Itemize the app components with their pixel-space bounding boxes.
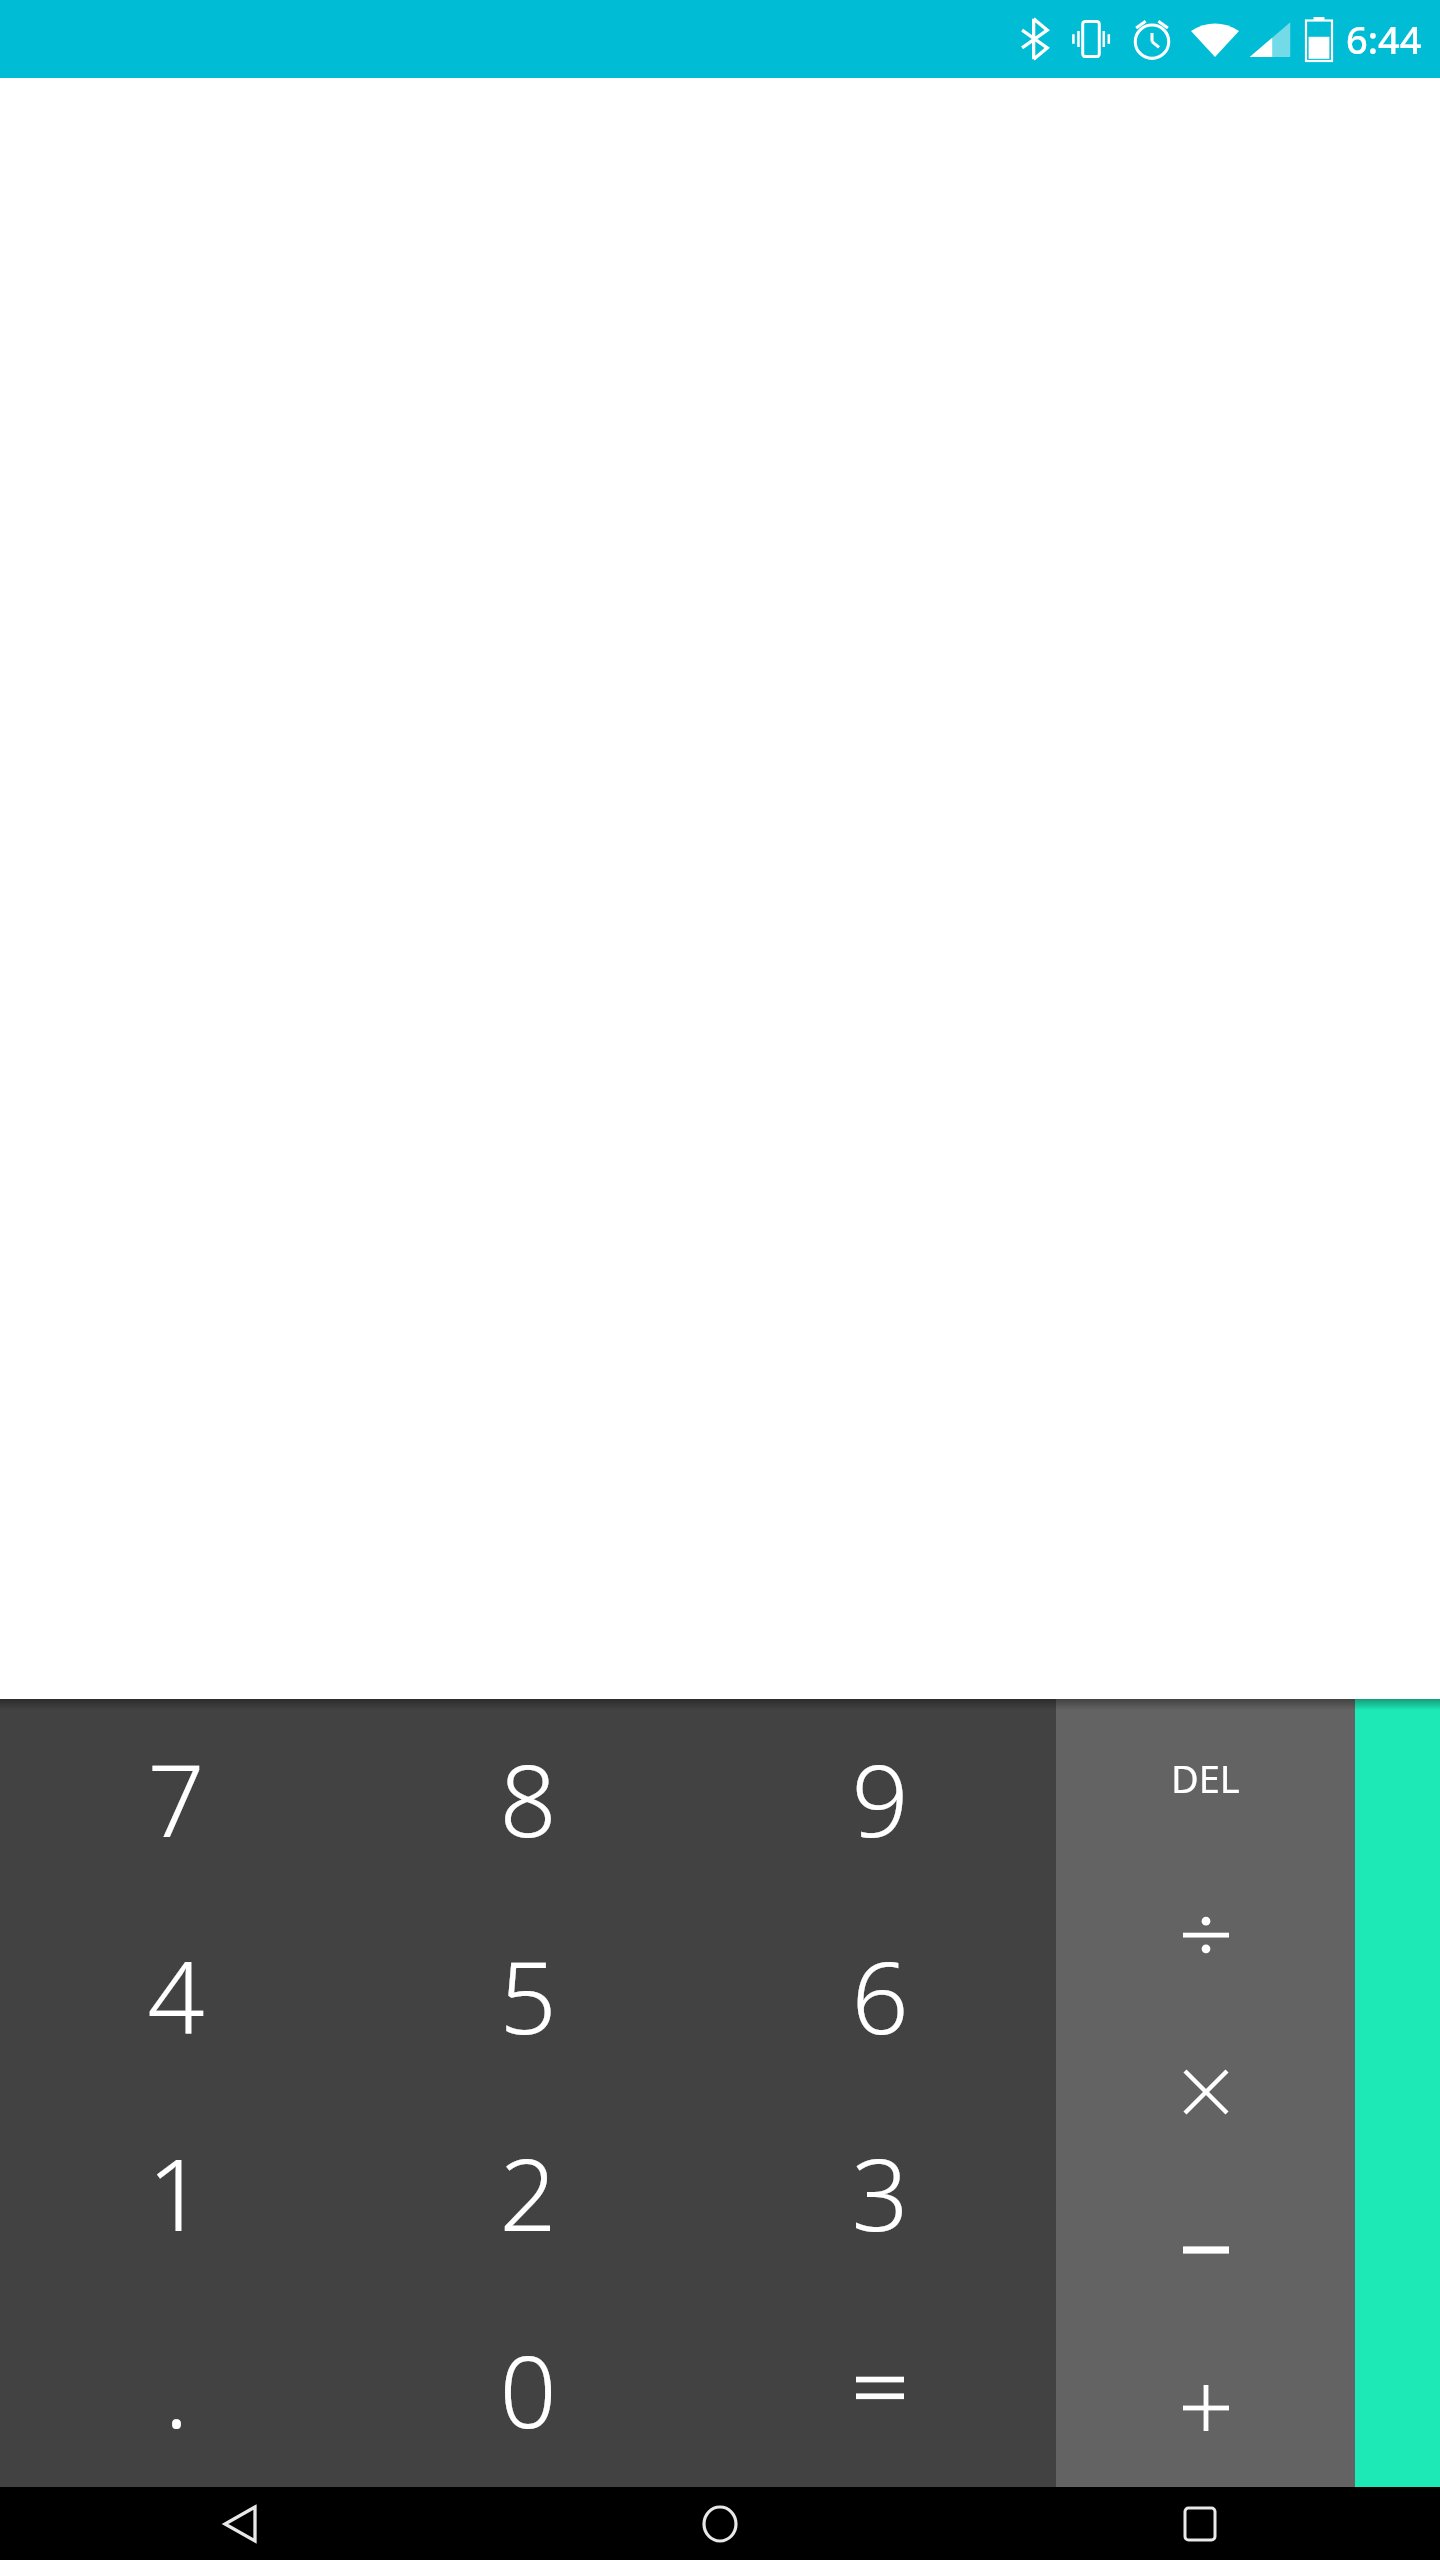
button[interactable]: 9 [704,1699,1056,1896]
button[interactable]: 0 [352,2290,704,2487]
staticText: 6 [851,1927,909,2063]
staticText: 7 [147,1730,205,1866]
button[interactable] [704,2290,1056,2487]
button[interactable]: 6 [704,1896,1056,2093]
staticText: DEL [1171,1752,1240,1804]
staticText: 1 [147,2124,205,2260]
button[interactable]: 4 [0,1896,352,2093]
button[interactable]: Divide [1056,1856,1355,2013]
button[interactable]: Recents [960,2487,1440,2560]
staticText: 8 [499,1730,557,1866]
button[interactable]: . [0,2290,352,2487]
button[interactable]: 3 [704,2093,1056,2290]
button[interactable]: Home [480,2487,960,2560]
button[interactable]: Back [0,2487,480,2560]
staticText: 0 [499,2321,557,2457]
staticText: 2 [499,2124,557,2260]
button[interactable]: 2 [352,2093,704,2290]
staticText: . [164,2321,189,2457]
staticText: 6:44 [1346,13,1422,65]
button[interactable]: 1 [0,2093,352,2290]
button[interactable]: 5 [352,1896,704,2093]
staticText: 4 [147,1927,205,2063]
button[interactable]: Minus [1056,2171,1355,2329]
button[interactable]: DEL [1056,1699,1355,1856]
staticText: 9 [851,1730,909,1866]
button[interactable]: 8 [352,1699,704,1896]
staticText: 3 [851,2124,909,2260]
button[interactable]: 7 [0,1699,352,1896]
button[interactable]: Multiply [1056,2013,1355,2171]
staticText: 5 [499,1927,557,2063]
button[interactable]: Plus [1056,2329,1355,2487]
